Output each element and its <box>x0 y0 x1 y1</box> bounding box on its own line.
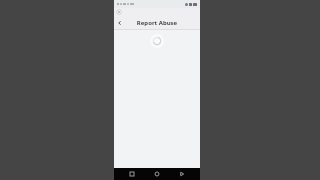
button[interactable]: Back <box>177 169 187 179</box>
button[interactable]: Close <box>116 9 122 15</box>
staticText: Report Abuse <box>126 19 188 27</box>
button[interactable]: Back <box>114 16 126 30</box>
button[interactable]: Recent apps <box>127 169 137 179</box>
button[interactable]: Home <box>152 169 162 179</box>
